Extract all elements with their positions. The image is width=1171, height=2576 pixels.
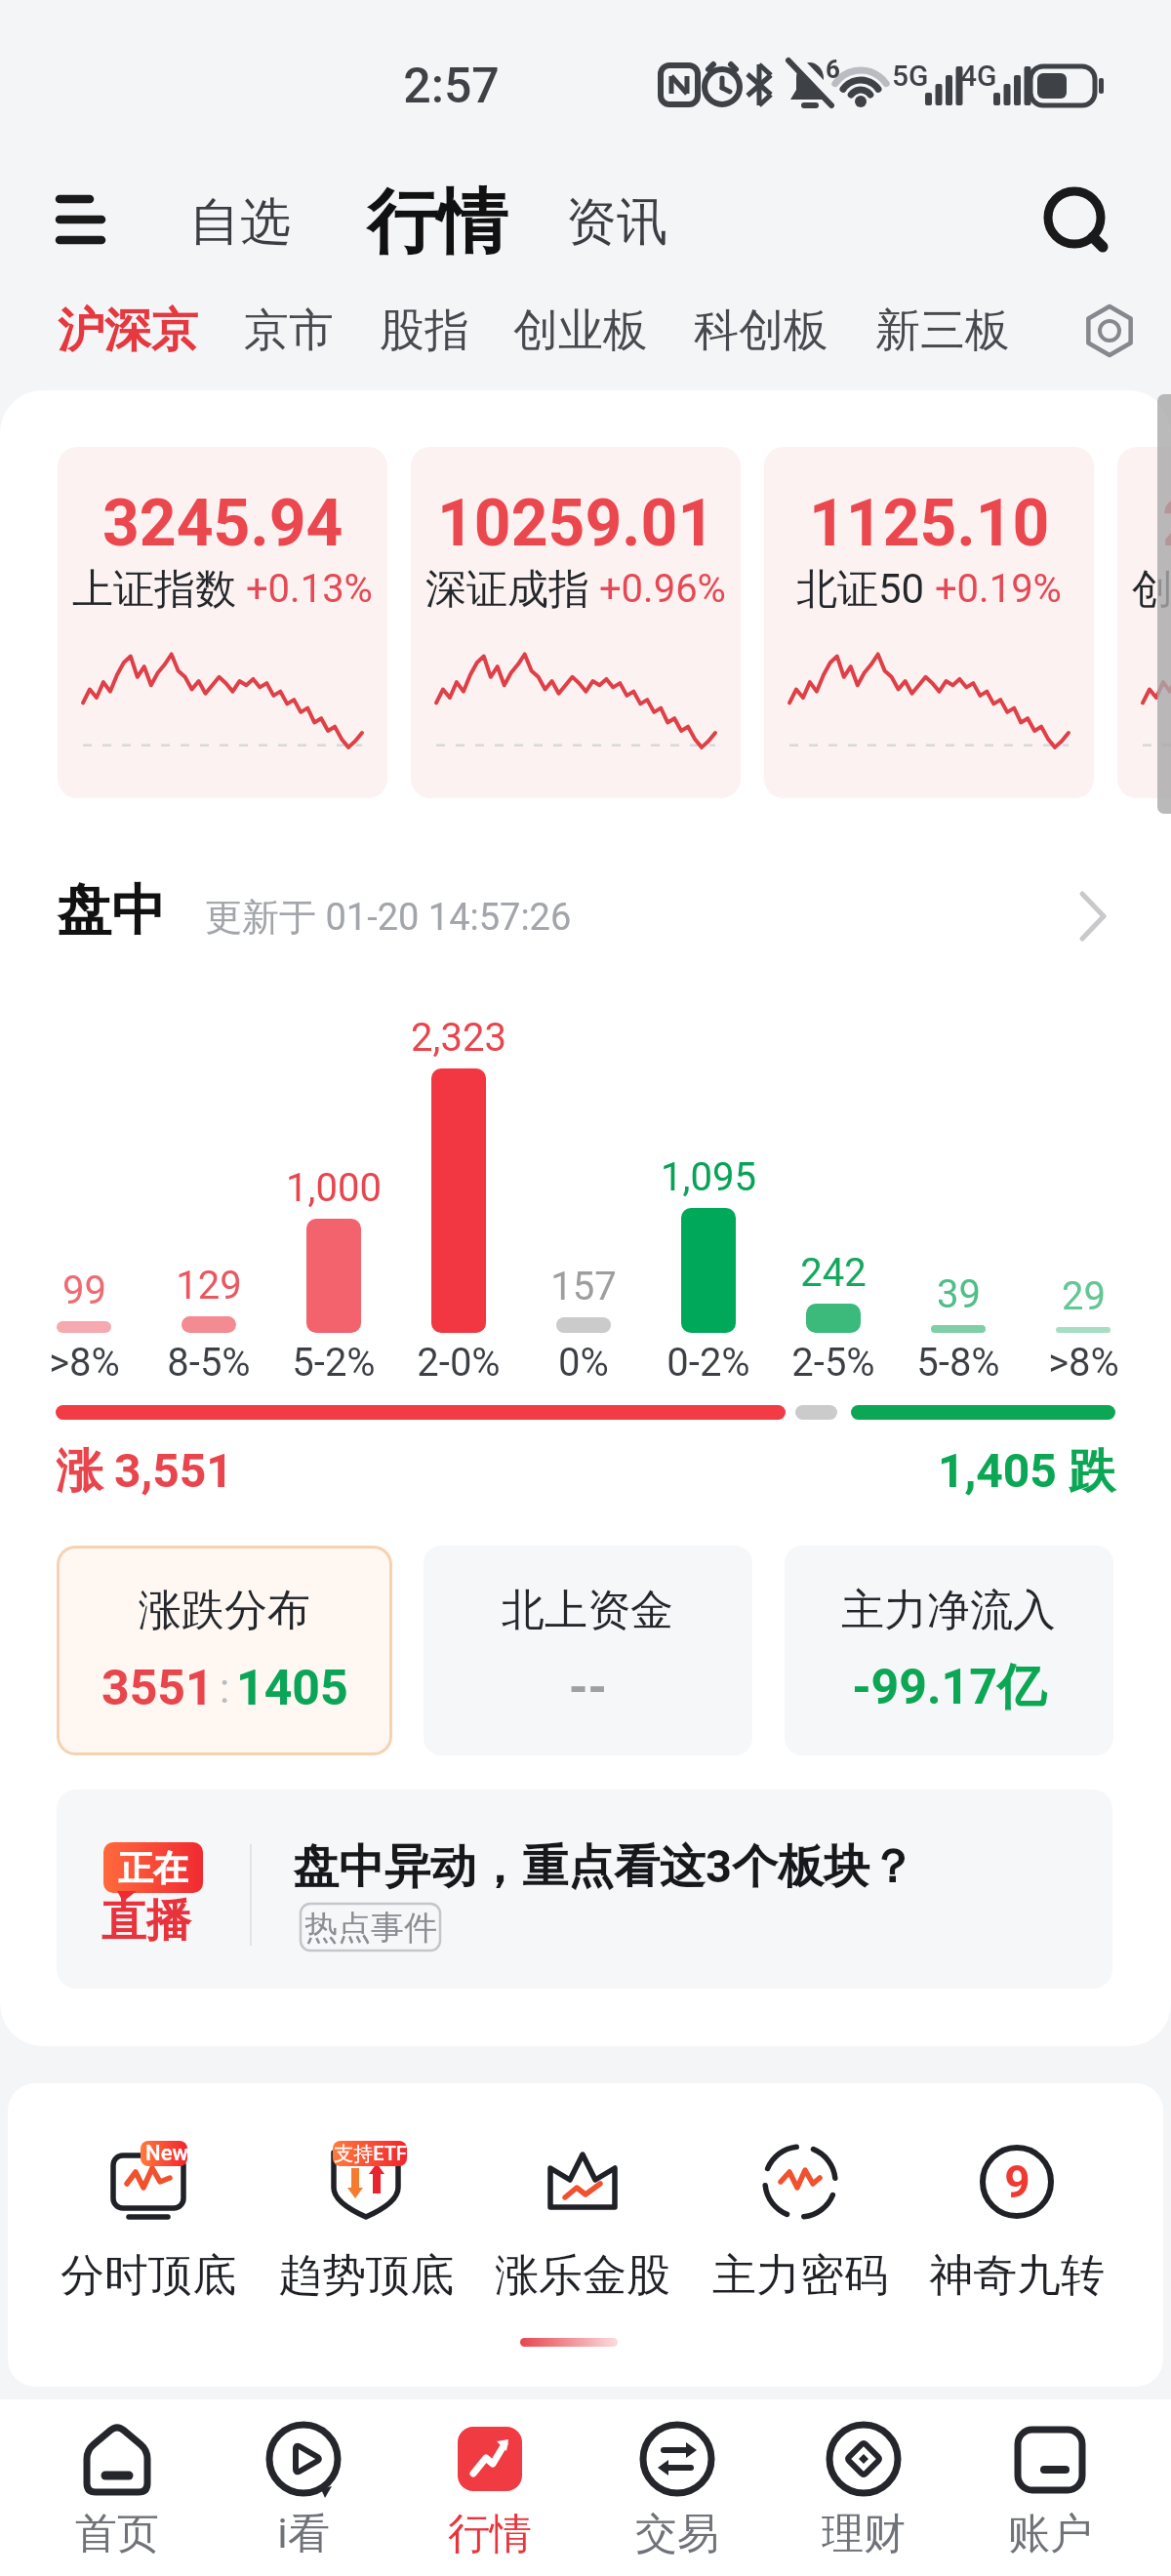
- staticText: --: [569, 1659, 607, 1716]
- staticText: 盘中: [57, 876, 166, 946]
- staticText: 自选: [189, 190, 291, 255]
- staticText: +0.19%: [925, 566, 1062, 612]
- staticText: 资讯: [566, 190, 667, 255]
- staticText: 分时顶底: [61, 2248, 236, 2303]
- staticText: 2-0%: [417, 1340, 501, 1386]
- staticText: 盘中异动，重点看这3个板块？: [293, 1838, 915, 1896]
- staticText: 242: [800, 1250, 867, 1296]
- staticText: 157: [550, 1264, 617, 1309]
- staticText: 新三板: [875, 302, 1010, 359]
- staticText: 交易: [635, 2508, 719, 2560]
- staticText: 创业板指: [1132, 564, 1171, 613]
- button[interactable]: [29, 2402, 205, 2568]
- staticText: 趋势顶底: [278, 2248, 454, 2303]
- button[interactable]: [776, 2402, 951, 2568]
- staticText: 支持ETF: [334, 2142, 407, 2166]
- staticText: 1405: [236, 1660, 348, 1717]
- staticText: 9: [1004, 2155, 1030, 2208]
- staticText: 1,000: [286, 1165, 382, 1211]
- button[interactable]: [57, 1790, 1112, 1989]
- staticText: 6: [826, 55, 840, 84]
- staticText: 主力净流入: [841, 1584, 1056, 1637]
- staticText: 1125.10: [809, 486, 1050, 548]
- staticText: 科创板: [694, 302, 828, 359]
- button[interactable]: [402, 2402, 578, 2568]
- staticText: 首页: [75, 2508, 159, 2560]
- button[interactable]: [480, 2108, 685, 2342]
- button[interactable]: [698, 2108, 903, 2342]
- staticText: 1,095: [661, 1154, 756, 1200]
- staticText: 129: [176, 1263, 242, 1308]
- staticText: 更新于 01-20 14:57:26: [205, 894, 572, 941]
- staticText: >8%: [1048, 1340, 1119, 1386]
- button[interactable]: [785, 1546, 1113, 1755]
- staticText: 0%: [558, 1340, 609, 1386]
- staticText: -99.17亿: [852, 1657, 1046, 1718]
- button[interactable]: [57, 1546, 392, 1755]
- staticText: 北证50: [796, 564, 925, 613]
- staticText: 5-2%: [292, 1340, 376, 1386]
- staticText: 39: [937, 1271, 981, 1317]
- staticText: 5-8%: [916, 1340, 1000, 1386]
- staticText: 行情: [367, 179, 507, 267]
- staticText: 京市: [244, 302, 334, 359]
- button[interactable]: [589, 2402, 765, 2568]
- staticText: 8-5%: [167, 1340, 251, 1386]
- staticText: 29: [1062, 1273, 1106, 1319]
- staticText: 99: [62, 1268, 106, 1313]
- staticText: 2123.44: [1162, 486, 1171, 548]
- staticText: 创业板: [513, 302, 648, 359]
- button[interactable]: [216, 2402, 391, 2568]
- button[interactable]: [962, 2402, 1138, 2568]
- button[interactable]: [46, 2108, 251, 2342]
- button[interactable]: [57, 193, 103, 248]
- staticText: +0.13%: [236, 566, 373, 612]
- staticText: 0-2%: [666, 1340, 750, 1386]
- staticText: 10259.01: [437, 486, 715, 548]
- staticText: 热点事件: [304, 1907, 437, 1949]
- staticText: 行情: [448, 2508, 532, 2560]
- staticText: 2:57: [403, 58, 500, 115]
- button[interactable]: 10259.01: [411, 447, 741, 798]
- button[interactable]: [263, 2108, 468, 2342]
- staticText: 涨 3,551: [56, 1442, 233, 1501]
- staticText: 4G: [960, 59, 997, 93]
- staticText: 上证指数: [72, 564, 236, 613]
- staticText: 3245.94: [102, 486, 343, 548]
- staticText: New: [145, 2141, 188, 2166]
- staticText: 账户: [1008, 2508, 1092, 2560]
- staticText: i看: [277, 2508, 330, 2560]
- button[interactable]: 3245.94: [58, 447, 387, 798]
- staticText: 神奇九转: [929, 2248, 1105, 2303]
- staticText: 2,323: [411, 1015, 506, 1061]
- staticText: 沪深京: [58, 302, 198, 360]
- staticText: 涨乐金股: [495, 2248, 670, 2303]
- staticText: 3551: [101, 1660, 214, 1717]
- staticText: 北上资金: [502, 1584, 673, 1637]
- staticText: 直播: [101, 1893, 191, 1950]
- staticText: +0.96%: [589, 566, 726, 612]
- staticText: 2-5%: [791, 1340, 875, 1386]
- button[interactable]: [1083, 304, 1136, 357]
- staticText: 股指: [380, 302, 469, 359]
- button[interactable]: 2123.44: [1117, 447, 1171, 798]
- staticText: 主力密码: [712, 2248, 888, 2303]
- staticText: :: [220, 1665, 230, 1712]
- staticText: 理财: [822, 2508, 906, 2560]
- button[interactable]: [914, 2108, 1119, 2342]
- staticText: 深证成指: [425, 564, 589, 613]
- staticText: >8%: [49, 1340, 120, 1386]
- button[interactable]: [1046, 190, 1110, 255]
- button[interactable]: 1125.10: [764, 447, 1094, 798]
- staticText: 1,405 跌: [938, 1442, 1115, 1501]
- button[interactable]: [424, 1546, 752, 1755]
